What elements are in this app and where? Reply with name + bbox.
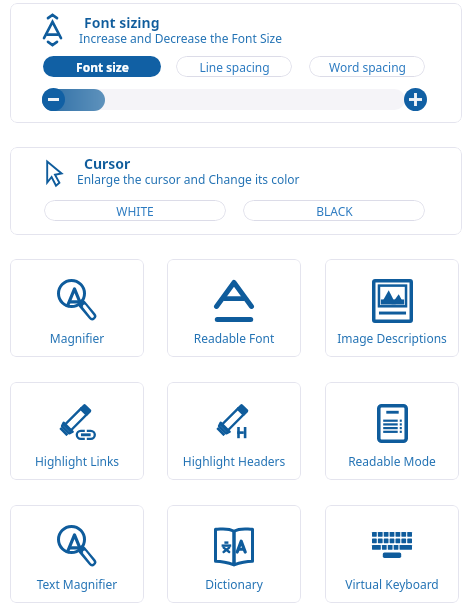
button[interactable]: Highlight Links xyxy=(10,382,144,480)
staticText: Highlight Headers xyxy=(167,453,301,469)
staticText: Font sizing xyxy=(84,13,160,32)
button[interactable]: Readable Font xyxy=(167,259,301,357)
staticText: Word spacing xyxy=(329,59,406,75)
button[interactable]: Font size xyxy=(43,56,161,77)
staticText: Increase and Decrease the Font Size xyxy=(79,30,282,46)
staticText: Enlarge the cursor and Change its color xyxy=(77,171,300,187)
staticText: Cursor xyxy=(84,154,131,173)
staticText: Dictionary xyxy=(167,576,301,592)
staticText: Virtual Keyboard xyxy=(325,576,459,592)
button[interactable]: Image Descriptions xyxy=(325,259,459,357)
button[interactable]: Magnifier xyxy=(10,259,144,357)
button[interactable]: Highlight Headers xyxy=(167,382,301,480)
staticText: Readable Mode xyxy=(325,453,459,469)
staticText: Font size xyxy=(76,59,129,75)
button[interactable]: Decrease font size xyxy=(42,88,65,111)
staticText: BLACK xyxy=(316,203,353,219)
button[interactable]: Increase font size xyxy=(404,88,427,111)
staticText: Highlight Links xyxy=(10,453,144,469)
button[interactable]: Text Magnifier xyxy=(10,505,144,603)
staticText: Line spacing xyxy=(199,59,270,75)
staticText: Readable Font xyxy=(167,330,301,346)
button[interactable]: Word spacing xyxy=(309,56,425,77)
button[interactable]: BLACK xyxy=(243,200,425,221)
button[interactable]: Dictionary xyxy=(167,505,301,603)
staticText: Text Magnifier xyxy=(10,576,144,592)
button[interactable]: Line spacing xyxy=(176,56,292,77)
staticText: Image Descriptions xyxy=(325,330,459,346)
button[interactable]: Virtual Keyboard xyxy=(325,505,459,603)
button[interactable]: WHITE xyxy=(44,200,226,221)
staticText: Magnifier xyxy=(10,330,144,346)
button[interactable]: Readable Mode xyxy=(325,382,459,480)
staticText: WHITE xyxy=(116,203,154,219)
